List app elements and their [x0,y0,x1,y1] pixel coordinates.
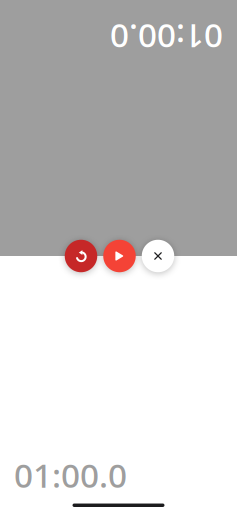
staticText: 01:00.0 [110,15,223,59]
button[interactable]: Close [142,240,174,272]
button[interactable]: Start [103,240,136,272]
staticText: 01:00.0 [14,453,127,497]
button[interactable]: Reset [65,240,97,272]
